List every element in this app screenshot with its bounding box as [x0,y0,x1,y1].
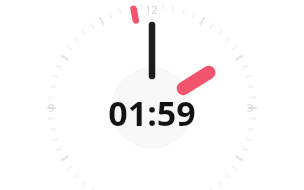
staticText: 12 [145,2,158,17]
staticText: 9 [48,100,55,115]
staticText: 3 [247,100,254,115]
staticText: 01:59 [108,90,196,136]
button[interactable]: Timer 01:59 [0,0,304,190]
